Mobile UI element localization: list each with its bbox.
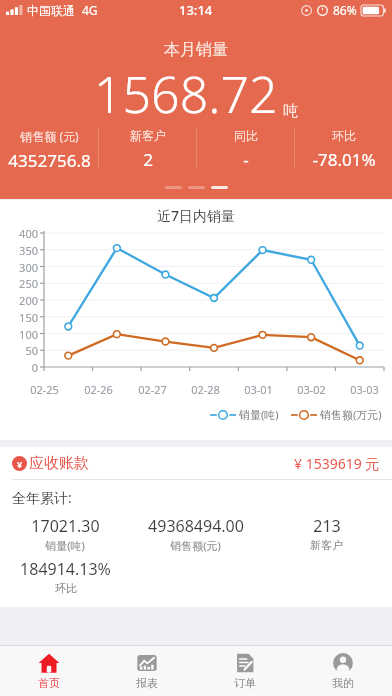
staticText: 03-01 — [244, 382, 273, 397]
staticText: 200 — [19, 293, 38, 307]
staticText: 销售额(元) — [170, 538, 221, 553]
staticText: 销售额 (元) — [20, 128, 79, 144]
staticText: 17021.30 — [31, 515, 100, 537]
staticText: 50 — [25, 343, 38, 357]
staticText: 订单 — [234, 676, 256, 690]
staticText: 销量(吨) — [45, 538, 85, 553]
staticText: 环比 — [332, 128, 356, 143]
staticText: 02-25 — [30, 382, 59, 397]
staticText: 销量(吨) — [239, 407, 279, 422]
staticText: 我的 — [332, 676, 354, 690]
staticText: 350 — [19, 243, 38, 257]
staticText: -78.01% — [312, 148, 376, 171]
staticText: 新客户 — [130, 128, 166, 143]
staticText: 全年累计: — [12, 488, 72, 507]
staticText: 86% — [333, 2, 357, 18]
staticText: ¥ — [17, 458, 23, 470]
button[interactable]: 订单 — [196, 646, 294, 696]
staticText: 400 — [19, 226, 38, 240]
staticText: 02-26 — [84, 382, 113, 397]
button[interactable]: ¥ — [0, 447, 392, 479]
staticText: 报表 — [136, 676, 158, 690]
staticText: 销售额(万元) — [320, 407, 382, 422]
staticText: 首页 — [38, 676, 60, 690]
staticText: 新客户 — [310, 538, 343, 552]
staticText: 应收账款 — [29, 454, 89, 473]
staticText: 13:14 — [179, 1, 213, 19]
staticText: 150 — [19, 310, 38, 324]
staticText: 近7日内销量 — [157, 206, 236, 225]
staticText: ¥ 1539619 元 — [294, 454, 380, 473]
staticText: 250 — [19, 276, 38, 290]
staticText: 03-02 — [297, 382, 326, 397]
staticText: 环比 — [55, 581, 77, 595]
staticText: 2 — [143, 148, 153, 171]
staticText: 4352756.8 — [8, 149, 91, 172]
staticText: 02-28 — [191, 382, 220, 397]
staticText: 4G — [82, 2, 98, 18]
staticText: - — [243, 148, 249, 171]
button[interactable]: 我的 — [294, 646, 392, 696]
staticText: 1568.72 — [94, 60, 278, 128]
staticText: 213 — [313, 515, 341, 537]
button[interactable]: 首页 — [0, 646, 98, 696]
staticText: 吨 — [283, 102, 298, 121]
staticText: 184914.13% — [20, 558, 111, 580]
staticText: 本月销量 — [164, 40, 228, 60]
staticText: 中国联通 — [27, 3, 75, 18]
staticText: 02-27 — [138, 382, 167, 397]
button[interactable]: 报表 — [98, 646, 196, 696]
staticText: 03-03 — [350, 382, 379, 397]
staticText: 49368494.00 — [148, 515, 244, 537]
staticText: 同比 — [234, 128, 258, 143]
staticText: 300 — [19, 260, 38, 274]
staticText: 0 — [31, 360, 38, 374]
staticText: 100 — [19, 327, 38, 341]
